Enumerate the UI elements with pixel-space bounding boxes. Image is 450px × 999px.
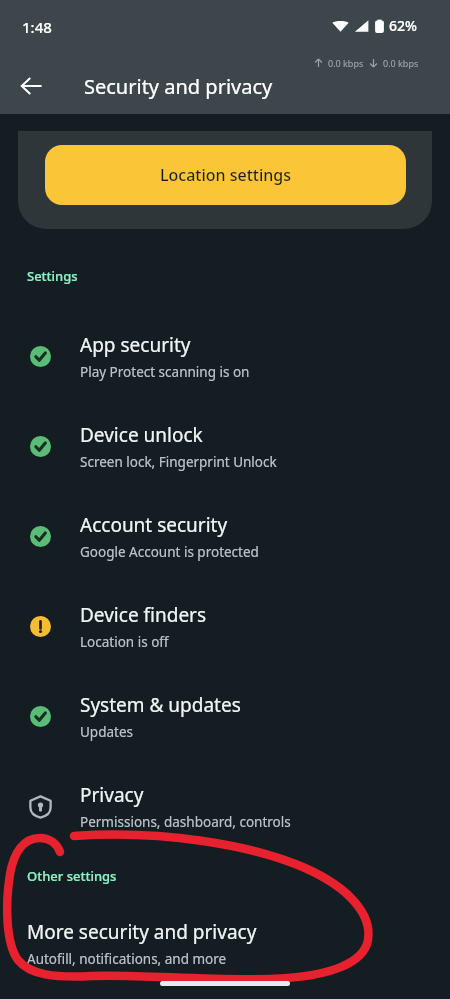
staticText: System & updates: [80, 692, 241, 718]
button[interactable]: Location settings: [45, 145, 406, 205]
staticText: Device unlock: [80, 422, 203, 448]
staticText: More security and privacy: [27, 919, 257, 945]
staticText: App security: [80, 332, 191, 358]
button[interactable]: Privacy: [0, 761, 450, 851]
button[interactable]: App security: [0, 311, 450, 401]
staticText: Privacy: [80, 782, 144, 808]
staticText: Location is off: [80, 633, 169, 651]
staticText: Play Protect scanning is on: [80, 363, 250, 381]
button[interactable]: System & updates: [0, 671, 450, 761]
staticText: Device finders: [80, 602, 207, 628]
staticText: Settings: [27, 267, 78, 285]
staticText: Screen lock, Fingerprint Unlock: [80, 453, 277, 471]
staticText: Location settings: [160, 164, 292, 186]
staticText: 1:48: [22, 17, 52, 37]
staticText: Permissions, dashboard, controls: [80, 813, 291, 831]
staticText: Other settings: [27, 867, 117, 885]
staticText: 0.0 kbps: [328, 57, 364, 69]
staticText: Autofill, notifications, and more: [27, 950, 227, 968]
staticText: Updates: [80, 723, 134, 741]
staticText: Account security: [80, 512, 228, 538]
button[interactable]: Device unlock: [0, 401, 450, 491]
staticText: 0.0 kbps: [383, 57, 419, 69]
staticText: Security and privacy: [84, 73, 273, 100]
staticText: 62%: [389, 16, 417, 35]
button[interactable]: Back: [10, 65, 52, 107]
button[interactable]: Device finders: [0, 581, 450, 671]
button[interactable]: Account security: [0, 491, 450, 581]
staticText: Google Account is protected: [80, 543, 259, 561]
button[interactable]: More security and privacy: [0, 915, 450, 978]
